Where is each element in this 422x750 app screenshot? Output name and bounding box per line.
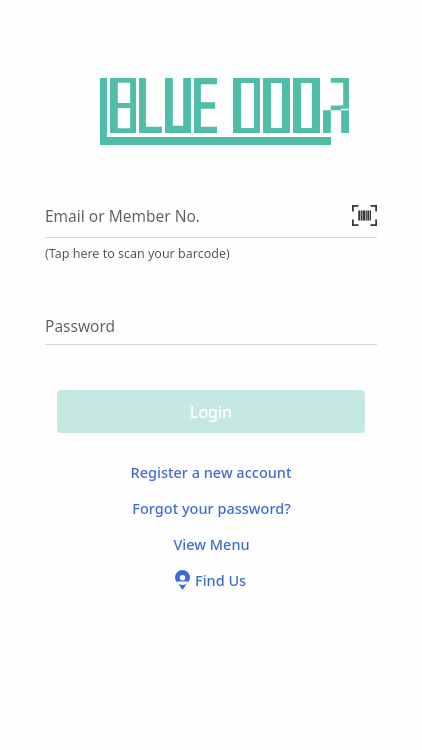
button[interactable]: Find Us	[175, 570, 247, 590]
staticText: Forgot your password?	[132, 498, 291, 518]
button[interactable]: Scan barcode	[352, 205, 377, 226]
button[interactable]: Login	[57, 390, 365, 433]
button[interactable]: Password	[45, 312, 377, 345]
button[interactable]: Forgot your password?	[0, 498, 422, 518]
staticText: (Tap here to scan your barcode)	[45, 245, 230, 262]
staticText: Find Us	[195, 570, 247, 590]
button[interactable]: Email or Member No.	[45, 200, 377, 262]
staticText: Email or Member No.	[45, 205, 352, 226]
staticText: Login	[190, 401, 232, 423]
staticText: Register a new account	[130, 462, 292, 482]
staticText: Password	[45, 315, 116, 336]
button[interactable]: View Menu	[0, 534, 422, 554]
staticText: View Menu	[173, 534, 250, 554]
button[interactable]: Register a new account	[0, 462, 422, 482]
